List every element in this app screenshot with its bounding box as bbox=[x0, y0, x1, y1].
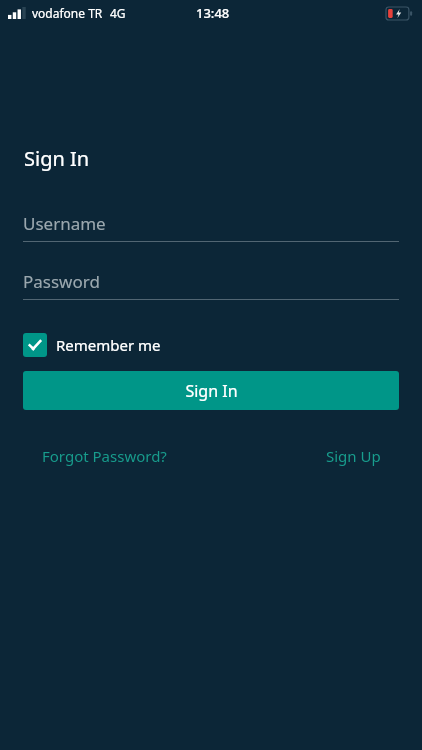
button[interactable]: Username bbox=[23, 210, 399, 242]
staticText: Password bbox=[23, 270, 100, 293]
staticText: 4G bbox=[110, 5, 126, 21]
staticText: Username bbox=[23, 212, 106, 235]
button[interactable]: Sign Up bbox=[326, 442, 381, 470]
staticText: Sign Up bbox=[326, 446, 381, 466]
staticText: Forgot Password? bbox=[42, 446, 167, 466]
button[interactable]: Forgot Password? bbox=[42, 442, 167, 470]
staticText: Sign In bbox=[24, 145, 90, 172]
button[interactable]: Password bbox=[23, 268, 399, 300]
other: Battery charging bbox=[386, 7, 412, 20]
staticText: vodafone TR bbox=[32, 5, 103, 21]
button[interactable]: Sign In bbox=[23, 371, 399, 410]
staticText: 13:48 bbox=[196, 4, 230, 22]
staticText: Sign In bbox=[185, 380, 238, 402]
button[interactable]: Remember me bbox=[23, 333, 169, 357]
staticText: Remember me bbox=[56, 335, 161, 355]
